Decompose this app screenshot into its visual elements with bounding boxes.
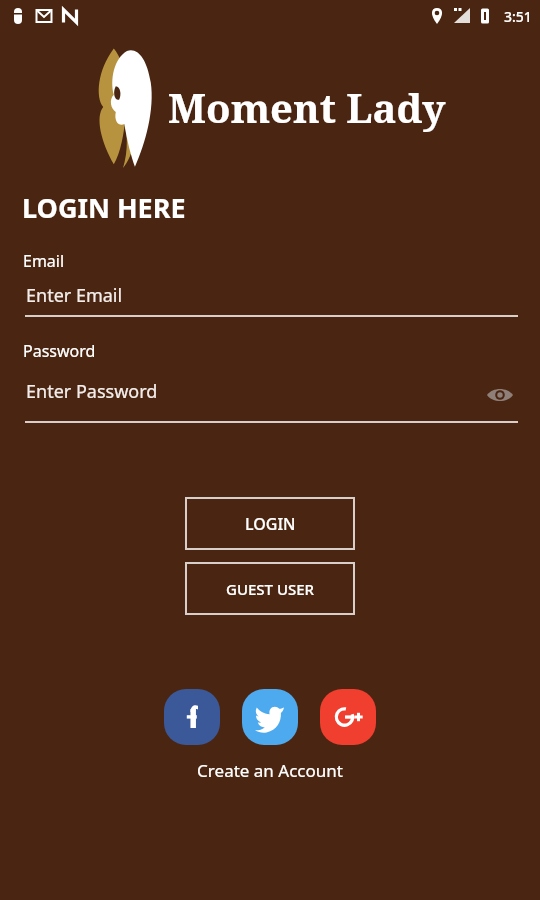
- button[interactable]: Sign in with Google: [320, 689, 376, 745]
- staticText: Enter Password: [26, 379, 158, 404]
- button[interactable]: Sign in with Twitter: [242, 689, 298, 745]
- button[interactable]: Enter Password: [24, 379, 479, 415]
- staticText: Email: [23, 250, 65, 272]
- staticText: 3:51: [504, 7, 532, 26]
- button[interactable]: GUEST USER: [185, 562, 355, 615]
- button[interactable]: Create an Account: [189, 757, 351, 784]
- button[interactable]: LOGIN: [185, 497, 355, 550]
- button[interactable]: Enter Email: [24, 283, 518, 319]
- staticText: LOGIN: [245, 513, 296, 535]
- staticText: Password: [23, 340, 96, 362]
- staticText: Moment Lady: [168, 80, 446, 134]
- staticText: LOGIN HERE: [22, 189, 186, 226]
- staticText: GUEST USER: [226, 579, 315, 599]
- staticText: Create an Account: [197, 759, 343, 782]
- button[interactable]: Sign in with Facebook: [164, 689, 220, 745]
- staticText: Enter Email: [26, 283, 123, 308]
- button[interactable]: Show password: [481, 376, 519, 414]
